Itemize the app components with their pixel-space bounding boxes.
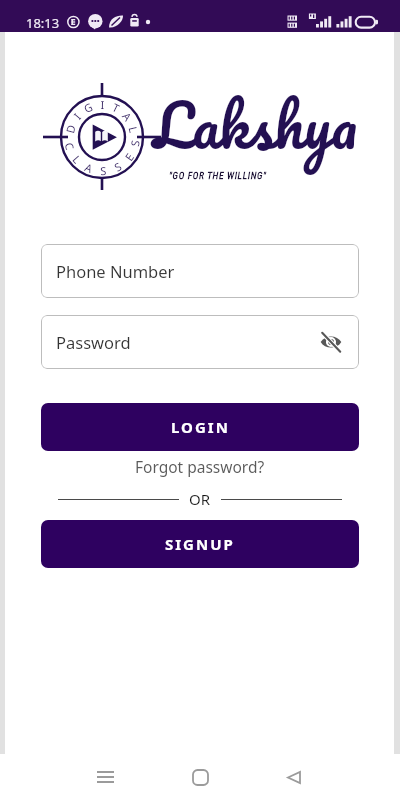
button[interactable]: Back <box>274 757 314 797</box>
button[interactable]: SIGNUP <box>41 520 359 568</box>
staticText: SIGNUP <box>165 534 235 554</box>
button[interactable]: Password <box>41 315 359 369</box>
staticText: "GO FOR THE WILLING" <box>169 170 267 181</box>
staticText: OR <box>189 489 211 509</box>
staticText: Password <box>56 331 131 353</box>
button[interactable]: Forgot password? <box>131 452 269 481</box>
staticText: 18:13 <box>26 14 60 32</box>
button[interactable]: LOGIN <box>41 403 359 451</box>
button[interactable]: Recent apps <box>85 757 125 797</box>
button[interactable]: Home <box>180 757 220 797</box>
staticText: Lakshya <box>153 73 358 175</box>
button[interactable]: Phone Number <box>41 244 359 298</box>
button[interactable]: Show password <box>318 329 344 355</box>
staticText: Phone Number <box>56 260 175 282</box>
staticText: LOGIN <box>171 417 230 437</box>
